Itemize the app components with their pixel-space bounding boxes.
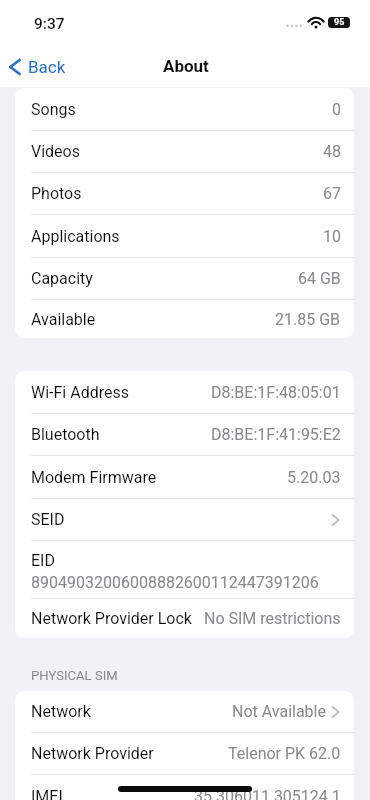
staticText: 10 — [323, 227, 341, 246]
staticText: Network Provider — [31, 744, 154, 763]
staticText: D8:BE:1F:48:05:01 — [211, 383, 341, 402]
staticText: 67 — [323, 184, 341, 203]
staticText: 95 — [334, 17, 345, 28]
staticText: 89049032006008882600112447391206 — [31, 573, 319, 592]
staticText: Photos — [31, 184, 82, 203]
button[interactable]: Songs — [15, 88, 354, 131]
button[interactable]: SEID — [15, 499, 354, 541]
staticText: About — [163, 56, 209, 76]
staticText: Network Provider Lock — [31, 609, 192, 628]
staticText: Available — [31, 310, 96, 329]
staticText: Applications — [31, 227, 120, 246]
staticText: Telenor PK 62.0 — [228, 744, 341, 763]
staticText: Songs — [31, 100, 76, 119]
staticText: 35 306011 305124 1 — [194, 787, 341, 800]
staticText: Videos — [31, 142, 80, 161]
staticText: Back — [28, 57, 66, 77]
staticText: 9:37 — [34, 15, 65, 33]
button[interactable]: Bluetooth — [15, 414, 354, 456]
button[interactable]: EID — [15, 541, 354, 599]
staticText: EID — [31, 551, 55, 570]
staticText: 0 — [332, 100, 341, 119]
staticText: 48 — [323, 142, 341, 161]
staticText: 64 GB — [298, 269, 341, 288]
button[interactable]: Available — [15, 300, 354, 338]
staticText: No SIM restrictions — [204, 609, 341, 628]
button[interactable]: Modem Firmware — [15, 456, 354, 499]
button[interactable]: Capacity — [15, 258, 354, 300]
staticText: Wi-Fi Address — [31, 383, 129, 402]
button[interactable]: IMEI — [15, 775, 354, 800]
button[interactable]: Network Provider — [15, 733, 354, 775]
button[interactable]: Wi-Fi Address — [15, 371, 354, 414]
button[interactable]: Network Provider Lock — [15, 599, 354, 638]
staticText: Network — [31, 702, 91, 721]
staticText: D8:BE:1F:41:95:E2 — [211, 425, 341, 444]
staticText: Modem Firmware — [31, 468, 157, 487]
staticText: Not Available — [232, 702, 326, 721]
button[interactable]: Photos — [15, 173, 354, 215]
button[interactable]: Applications — [15, 215, 354, 258]
staticText: 5.20.03 — [287, 468, 341, 487]
staticText: SEID — [31, 510, 65, 529]
staticText: IMEI — [31, 787, 63, 800]
staticText: Capacity — [31, 269, 93, 288]
staticText: Bluetooth — [31, 425, 100, 444]
staticText: PHYSICAL SIM — [31, 668, 118, 683]
button[interactable]: Network — [15, 691, 354, 733]
button[interactable]: Videos — [15, 131, 354, 173]
button[interactable]: Back — [6, 53, 69, 81]
staticText: 21.85 GB — [275, 310, 341, 329]
